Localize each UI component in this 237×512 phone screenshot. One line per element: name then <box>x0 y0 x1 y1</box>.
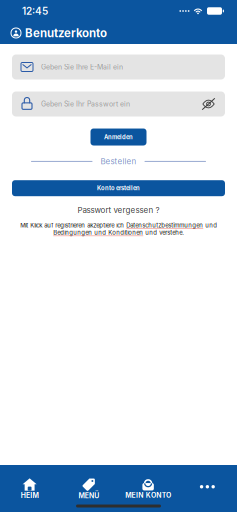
button[interactable]: Anmelden <box>90 128 146 145</box>
staticText: Bestellen <box>100 156 136 166</box>
button[interactable]: MEIN KONTO <box>118 465 178 505</box>
staticText: 12:45 <box>22 5 48 17</box>
staticText: Konto erstellen <box>97 185 140 192</box>
button[interactable]: More <box>178 468 237 503</box>
staticText: Passwort vergessen ? <box>77 205 159 215</box>
button[interactable]: Passwort vergessen ? <box>77 205 159 215</box>
staticText: Benutzerkonto <box>25 26 107 40</box>
button[interactable]: MENÜ <box>59 465 118 506</box>
staticText: Mit Klick auf registrieren akzeptiere ic… <box>20 222 217 236</box>
button[interactable]: HEIM <box>0 465 59 505</box>
button[interactable]: Konto erstellen <box>12 180 225 196</box>
staticText: Geben Sie Ihre E-Mail ein <box>41 63 123 71</box>
staticText: Anmelden <box>104 133 133 141</box>
staticText: Geben Sie Ihr Passwort ein <box>41 100 130 108</box>
staticText: MEIN KONTO <box>125 491 171 499</box>
staticText: HEIM <box>21 491 39 500</box>
staticText: MENÜ <box>78 491 99 500</box>
